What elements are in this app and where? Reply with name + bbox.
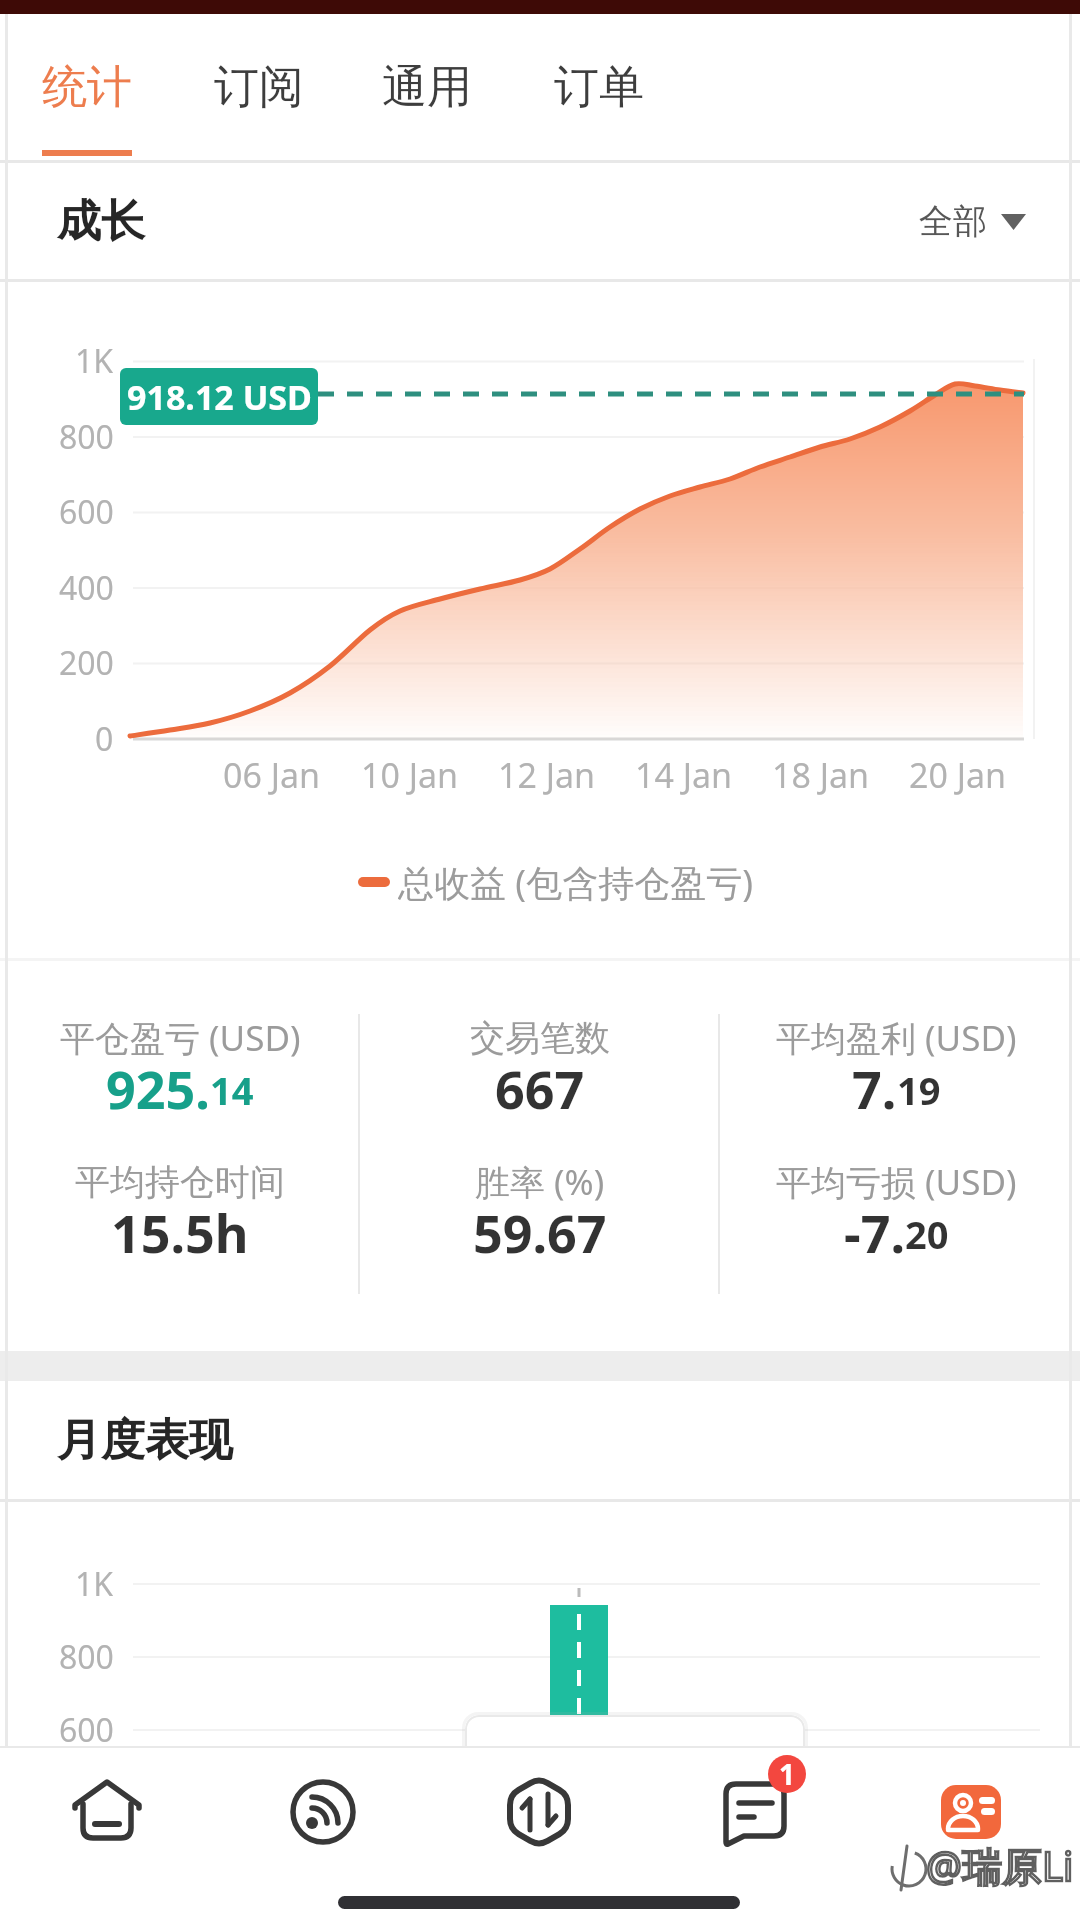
staticText: 平均盈利 (USD) bbox=[776, 1014, 1017, 1062]
staticText: 14 Jan bbox=[635, 752, 733, 796]
staticText: 200 bbox=[59, 641, 114, 685]
staticText: 18 Jan bbox=[772, 752, 870, 796]
staticText: 7. bbox=[852, 1053, 897, 1121]
button[interactable]: 订单 bbox=[554, 14, 644, 160]
staticText: 06 Jan bbox=[223, 752, 321, 796]
staticText: 15.5h bbox=[111, 1197, 249, 1265]
staticText: 19 bbox=[897, 1064, 941, 1116]
button[interactable] bbox=[216, 1746, 432, 1878]
staticText: 平均持仓时间 bbox=[75, 1160, 285, 1204]
staticText: 667 bbox=[495, 1053, 585, 1121]
staticText: 925. bbox=[106, 1053, 210, 1121]
staticText: 订单 bbox=[554, 59, 644, 116]
button[interactable] bbox=[432, 1746, 648, 1878]
staticText: 通用 bbox=[382, 59, 472, 116]
staticText: 平均亏损 (USD) bbox=[776, 1158, 1017, 1206]
staticText: 600 bbox=[59, 1708, 114, 1752]
button[interactable]: 订阅 bbox=[214, 14, 304, 160]
staticText: 20 Jan bbox=[909, 752, 1007, 796]
staticText: 月度表现 bbox=[57, 1413, 233, 1468]
staticText: 1K bbox=[75, 339, 114, 383]
staticText: 交易笔数 bbox=[470, 1016, 610, 1060]
staticText: 918.12 USD bbox=[127, 374, 312, 420]
staticText: @瑞原Li bbox=[926, 1838, 1074, 1890]
staticText: 总收益 (包含持仓盈亏) bbox=[398, 858, 753, 906]
staticText: 1K bbox=[75, 1562, 114, 1606]
staticText: 平仓盈亏 (USD) bbox=[60, 1014, 301, 1062]
staticText: 400 bbox=[59, 566, 114, 610]
button[interactable]: 通用 bbox=[382, 14, 472, 160]
staticText: 10 Jan bbox=[361, 752, 459, 796]
button[interactable] bbox=[0, 1746, 216, 1878]
staticText: -7. bbox=[844, 1197, 905, 1265]
staticText: 14 bbox=[210, 1064, 254, 1116]
staticText: 1 bbox=[779, 1755, 796, 1793]
staticText: 全部 bbox=[919, 200, 987, 243]
button[interactable]: 统计 bbox=[42, 14, 132, 160]
staticText: 订阅 bbox=[214, 59, 304, 116]
staticText: 59.67 bbox=[473, 1197, 607, 1265]
button[interactable] bbox=[648, 1746, 864, 1878]
staticText: 20 bbox=[905, 1208, 949, 1260]
button[interactable]: 全部 bbox=[919, 200, 1026, 243]
staticText: 800 bbox=[59, 1635, 114, 1679]
staticText: 统计 bbox=[42, 59, 132, 116]
staticText: 800 bbox=[59, 415, 114, 459]
staticText: 胜率 (%) bbox=[475, 1158, 605, 1206]
button[interactable] bbox=[864, 1746, 1080, 1878]
staticText: 成长 bbox=[57, 194, 145, 249]
staticText: 0 bbox=[95, 717, 114, 761]
staticText: 600 bbox=[59, 490, 114, 534]
staticText: 12 Jan bbox=[498, 752, 596, 796]
